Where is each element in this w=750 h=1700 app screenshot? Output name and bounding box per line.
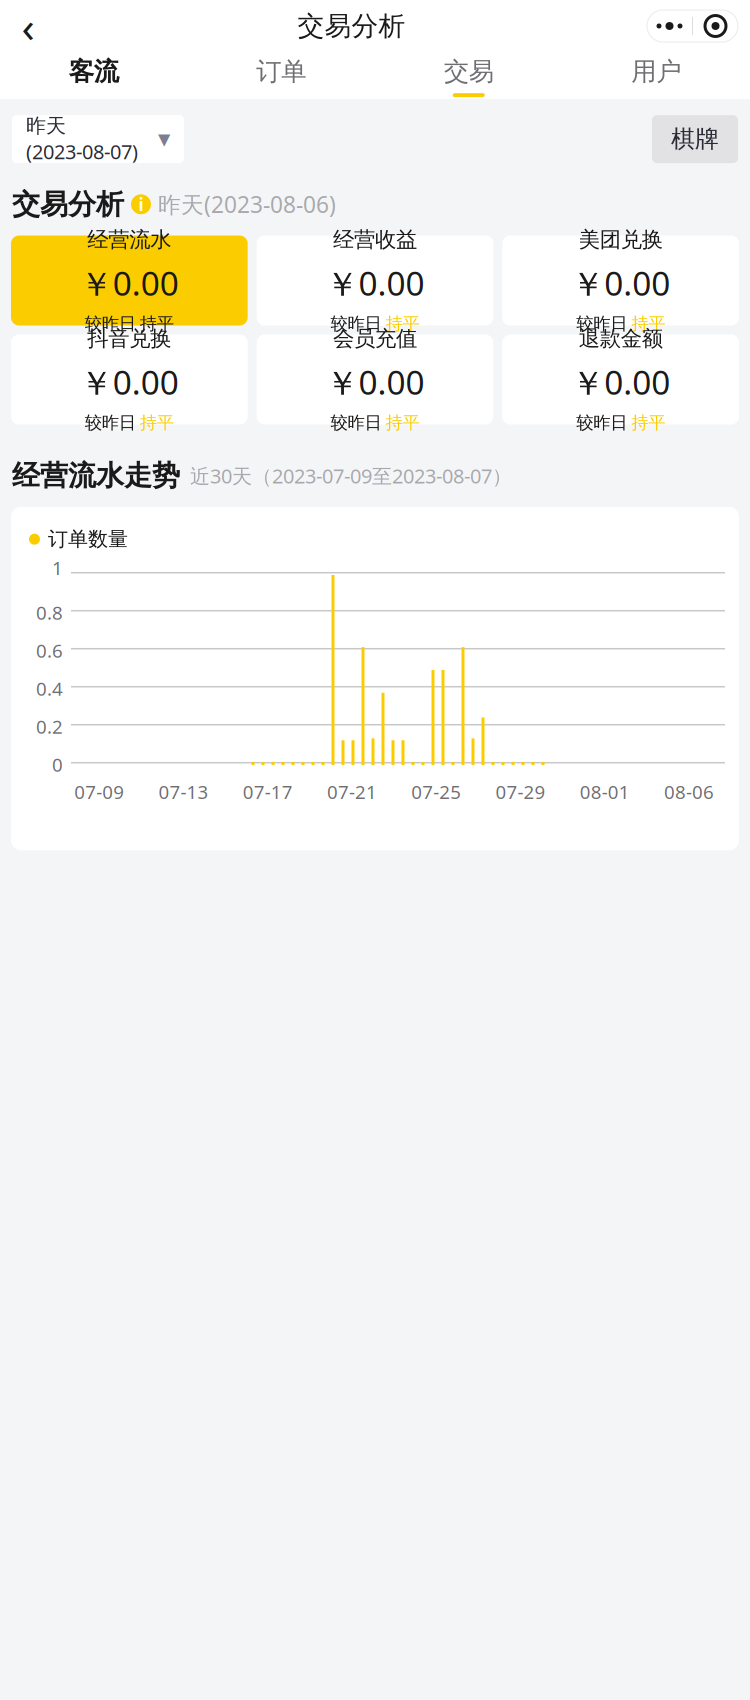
button[interactable]: 订单: [187, 56, 375, 97]
staticText: 08-01: [580, 779, 630, 804]
staticText: ￥0.00: [325, 360, 424, 404]
staticText: 持平: [385, 313, 419, 334]
staticText: ￥0.00: [325, 261, 424, 305]
staticText: 较昨日: [330, 412, 381, 433]
staticText: 0.4: [36, 676, 63, 701]
staticText: 07-09: [74, 779, 124, 804]
staticText: ￥0.00: [80, 360, 179, 404]
button[interactable]: More: [647, 10, 692, 42]
button[interactable]: 抖音兑换: [11, 334, 248, 424]
staticText: 07-29: [495, 779, 545, 804]
staticText: i: [138, 193, 143, 216]
button[interactable]: 交易: [375, 56, 562, 97]
staticText: 昨天(2023-08-06): [158, 189, 336, 219]
staticText: 0.8: [36, 600, 63, 625]
staticText: ▼: [158, 130, 170, 148]
button[interactable]: 会员充值: [257, 334, 493, 424]
staticText: 07-13: [158, 779, 208, 804]
staticText: ‹: [21, 0, 34, 54]
staticText: ￥0.00: [571, 360, 670, 404]
button[interactable]: 棋牌: [652, 115, 738, 163]
staticText: 0.2: [36, 714, 63, 739]
button[interactable]: 用户: [562, 56, 750, 97]
staticText: 退款金额: [579, 325, 663, 352]
staticText: 近30天（2023-07-09至2023-08-07）: [190, 462, 512, 489]
staticText: 订单数量: [48, 527, 128, 551]
staticText: 持平: [140, 313, 174, 334]
staticText: 美团兑换: [579, 226, 663, 253]
staticText: 持平: [631, 412, 665, 433]
staticText: 较昨日: [576, 412, 627, 433]
staticText: 经营流水走势: [12, 458, 180, 493]
staticText: 抖音兑换: [87, 325, 171, 352]
staticText: 订单: [256, 56, 306, 87]
staticText: ￥0.00: [80, 261, 179, 305]
staticText: 持平: [140, 412, 174, 433]
staticText: 07-25: [411, 779, 461, 804]
staticText: 交易: [444, 56, 494, 87]
staticText: 较昨日: [85, 412, 136, 433]
staticText: 较昨日: [85, 313, 136, 334]
staticText: 棋牌: [671, 124, 719, 154]
staticText: 07-21: [327, 779, 377, 804]
button[interactable]: 客流: [0, 56, 187, 97]
staticText: 1: [52, 555, 63, 580]
button[interactable]: Back: [0, 4, 56, 48]
staticText: 07-17: [243, 779, 293, 804]
button[interactable]: 美团兑换: [502, 235, 739, 325]
button[interactable]: Close: [693, 10, 738, 42]
staticText: 持平: [385, 412, 419, 433]
staticText: 08-06: [664, 779, 714, 804]
button[interactable]: Info: [124, 190, 158, 218]
staticText: 会员充值: [333, 325, 417, 352]
staticText: 客流: [69, 56, 119, 87]
staticText: 交易分析: [12, 187, 124, 221]
button[interactable]: 经营流水: [11, 235, 248, 325]
staticText: 用户: [631, 56, 681, 87]
staticText: 昨天(2023-08-07): [26, 114, 138, 165]
staticText: 较昨日: [330, 313, 381, 334]
button[interactable]: 昨天(2023-08-07): [12, 115, 184, 163]
staticText: 经营收益: [333, 226, 417, 253]
button[interactable]: 退款金额: [502, 334, 739, 424]
staticText: ￥0.00: [571, 261, 670, 305]
staticText: 较昨日: [576, 313, 627, 334]
staticText: 0.6: [36, 638, 63, 663]
staticText: 持平: [631, 313, 665, 334]
button[interactable]: 经营收益: [257, 235, 493, 325]
staticText: 0: [52, 752, 63, 777]
staticText: 交易分析: [297, 10, 405, 42]
staticText: 经营流水: [87, 226, 171, 253]
